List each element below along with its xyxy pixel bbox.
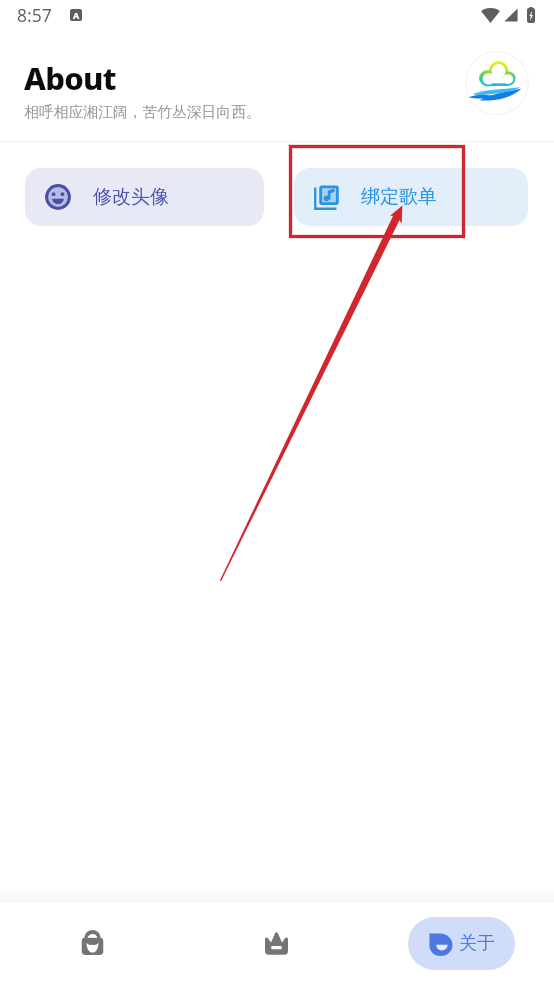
button[interactable]: Member [184,902,369,984]
staticText: 8:57 [17,3,52,27]
button[interactable]: 绑定歌单 [294,168,528,226]
button[interactable]: Shop [0,902,184,984]
staticText: A [73,9,80,21]
button[interactable]: 关于 [408,917,515,970]
staticText: About [24,57,116,99]
button[interactable]: 修改头像 [25,168,264,226]
staticText: 修改头像 [93,185,169,209]
button[interactable]: App logo [465,51,529,115]
staticText: 绑定歌单 [361,185,437,209]
staticText: 相呼相应湘江阔，苦竹丛深日向西。 [24,103,261,122]
staticText: 关于 [459,932,495,955]
